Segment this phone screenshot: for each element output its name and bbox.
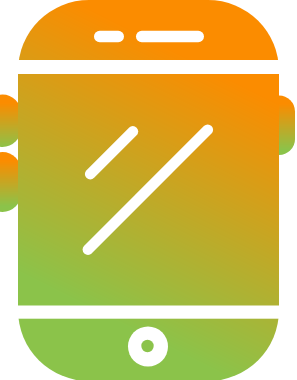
button[interactable]: Tablet device icon	[0, 0, 297, 380]
